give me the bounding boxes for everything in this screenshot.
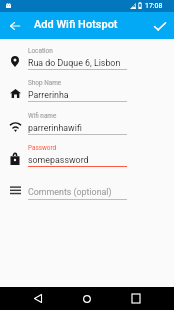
button[interactable]: Wifi name	[0, 109, 174, 139]
button[interactable]: Shop Name	[0, 76, 174, 106]
staticText: Location	[28, 47, 53, 55]
button[interactable]: Save	[148, 14, 172, 38]
staticText: Password	[28, 144, 57, 152]
staticText: Shop Name	[28, 79, 62, 87]
staticText: parrerinhawifi	[28, 123, 82, 133]
button[interactable]: Home	[64, 287, 110, 310]
button[interactable]: Comments (optional)	[0, 177, 174, 205]
button[interactable]: Password	[0, 141, 174, 171]
staticText: 17:08	[145, 2, 163, 10]
staticText: Wifi name	[28, 112, 57, 120]
staticText: somepassword	[28, 155, 89, 165]
button[interactable]: Back	[15, 287, 61, 310]
button[interactable]: Location	[0, 44, 174, 74]
staticText: Parrerinha	[28, 90, 69, 100]
button[interactable]: Back	[3, 14, 27, 38]
staticText: Add Wifi Hotspot	[34, 18, 118, 31]
button[interactable]: Recent apps	[113, 287, 159, 310]
staticText: Rua do Duque 6, Lisbon	[28, 58, 121, 68]
staticText: Comments (optional)	[28, 187, 112, 197]
